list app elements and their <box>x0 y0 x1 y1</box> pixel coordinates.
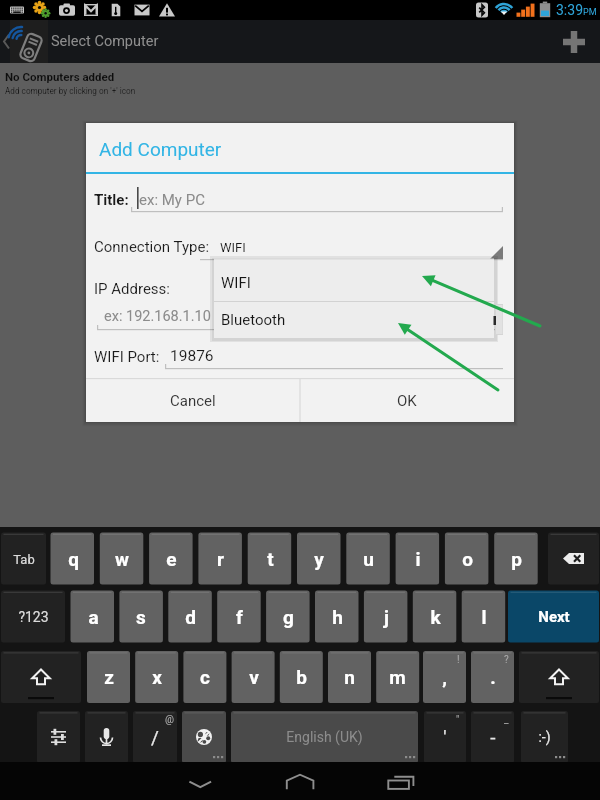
button[interactable]: Shift <box>1 651 81 703</box>
staticText: Connection Type: <box>94 238 210 256</box>
staticText: . <box>490 666 496 688</box>
button[interactable]: x <box>135 651 178 703</box>
button[interactable]: v <box>232 651 275 703</box>
button[interactable]: b <box>280 651 323 703</box>
staticText: ' <box>443 726 447 748</box>
staticText: PM <box>583 7 597 18</box>
staticText: OK <box>397 392 417 410</box>
staticText: 3:39 <box>556 2 583 18</box>
staticText: @ <box>165 714 174 726</box>
staticText: z <box>104 666 114 688</box>
button[interactable]: Tab <box>1 533 46 585</box>
staticText: x <box>152 666 162 688</box>
button[interactable]: e <box>149 533 193 585</box>
staticText: a <box>88 606 99 628</box>
staticText: :-) <box>538 729 551 745</box>
button[interactable]: Keyboard settings <box>37 711 80 763</box>
staticText: / <box>151 726 159 748</box>
button[interactable]: p <box>494 533 538 585</box>
button[interactable]: j <box>364 591 408 643</box>
button[interactable]: i <box>396 533 440 585</box>
staticText: q <box>68 548 79 570</box>
staticText: e <box>166 548 177 570</box>
button[interactable]: Bluetooth <box>214 302 494 338</box>
button[interactable]: Navigate up <box>0 20 50 63</box>
staticText: l <box>481 606 487 628</box>
button[interactable]: z <box>87 651 130 703</box>
staticText: _ <box>504 714 509 726</box>
staticText: ex: My PC <box>139 191 205 209</box>
staticText: IP Address: <box>94 280 170 298</box>
staticText: w <box>115 548 129 570</box>
staticText: Select Computer <box>51 33 159 50</box>
button[interactable]: Change language <box>182 711 226 763</box>
button[interactable]: y <box>297 533 341 585</box>
button[interactable]: m <box>376 651 419 703</box>
button[interactable]: Recent apps <box>375 762 425 800</box>
button[interactable]: Cancel <box>86 379 300 422</box>
staticText: b <box>296 666 307 688</box>
staticText: " <box>456 714 460 726</box>
button[interactable]: d <box>168 591 212 643</box>
button[interactable]: OK <box>300 379 514 422</box>
button[interactable]: t <box>248 533 292 585</box>
button[interactable]: k <box>413 591 457 643</box>
button[interactable]: Next <box>508 591 599 643</box>
button[interactable]: Backspace <box>548 533 599 585</box>
button[interactable]: ' <box>424 711 466 763</box>
staticText: English (UK) <box>286 729 363 745</box>
staticText: v <box>249 666 259 688</box>
button[interactable]: Home <box>275 762 325 800</box>
button[interactable]: n <box>328 651 371 703</box>
button[interactable]: c <box>183 651 226 703</box>
button[interactable]: WIFI <box>214 262 494 303</box>
button[interactable]: - <box>471 711 514 763</box>
button[interactable]: q <box>51 533 95 585</box>
button[interactable]: Shift <box>519 651 599 703</box>
staticText: WIFI <box>221 274 251 292</box>
button[interactable]: English (UK) <box>231 711 418 763</box>
staticText: Cancel <box>170 392 216 410</box>
staticText: , <box>442 666 447 688</box>
button[interactable]: l <box>462 591 506 643</box>
button[interactable]: a <box>71 591 115 643</box>
button[interactable]: h <box>315 591 359 643</box>
button[interactable]: . <box>471 651 514 703</box>
staticText: WIFI <box>220 240 246 255</box>
button[interactable]: ?123 <box>1 591 65 643</box>
button[interactable]: s <box>119 591 163 643</box>
staticText: k <box>430 606 441 628</box>
button[interactable]: Add computer <box>548 20 600 63</box>
button[interactable]: o <box>445 533 489 585</box>
button[interactable]: :-) <box>521 711 568 763</box>
staticText: Tab <box>13 552 35 567</box>
button[interactable]: w <box>100 533 144 585</box>
staticText: j <box>384 606 389 628</box>
staticText: i <box>415 548 421 570</box>
staticText: r <box>217 548 224 570</box>
staticText: ex: 192.168.1.10 <box>104 308 211 325</box>
staticText: t <box>267 548 274 570</box>
staticText: No Computers added <box>5 70 115 83</box>
staticText: Next <box>538 608 570 626</box>
staticText: s <box>136 606 146 628</box>
button[interactable]: r <box>198 533 242 585</box>
staticText: Bluetooth <box>221 311 286 329</box>
staticText: d <box>185 606 196 628</box>
staticText: p <box>511 548 522 570</box>
staticText: 19876 <box>170 347 214 365</box>
button[interactable]: g <box>266 591 310 643</box>
button[interactable]: f <box>217 591 261 643</box>
staticText: Add Computer <box>99 138 222 160</box>
button[interactable]: Voice input <box>85 711 128 763</box>
button[interactable]: , <box>423 651 466 703</box>
button[interactable]: Hide keyboard <box>175 762 225 800</box>
button[interactable]: / <box>133 711 177 763</box>
staticText: u <box>363 548 374 570</box>
staticText: c <box>200 666 210 688</box>
staticText: y <box>314 548 324 570</box>
staticText: g <box>283 606 294 628</box>
staticText: n <box>344 666 355 688</box>
staticText: Title: <box>94 191 129 209</box>
button[interactable]: u <box>346 533 390 585</box>
